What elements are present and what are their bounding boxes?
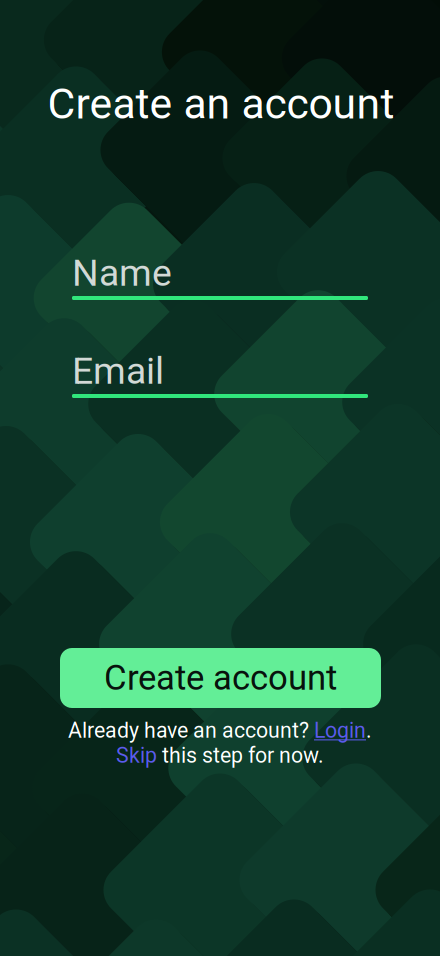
staticText: Skip xyxy=(116,743,157,768)
staticText: Create an account xyxy=(47,79,394,129)
staticText: Name xyxy=(72,251,172,295)
button[interactable]: Create account xyxy=(60,648,381,708)
staticText: Login xyxy=(314,718,366,743)
staticText: Email xyxy=(72,349,164,393)
button[interactable]: Login xyxy=(314,718,366,743)
staticText: . xyxy=(366,718,372,743)
staticText: Create account xyxy=(104,658,337,698)
staticText: Already have an account? xyxy=(68,718,314,743)
staticText: this step for now. xyxy=(157,743,324,768)
button[interactable]: Skip xyxy=(116,743,157,768)
